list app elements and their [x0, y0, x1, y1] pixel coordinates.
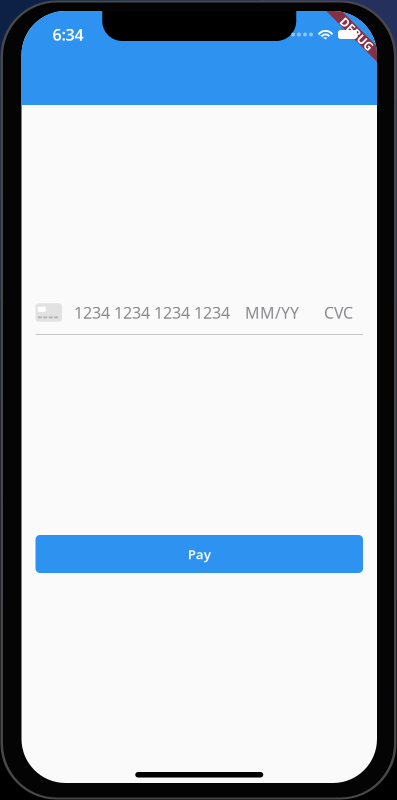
- staticText: CVC: [324, 302, 353, 323]
- staticText: DEBUG: [336, 26, 378, 42]
- staticText: 6:34: [52, 24, 83, 45]
- staticText: 1234 1234 1234 1234: [74, 302, 230, 323]
- staticText: MM/YY: [245, 302, 299, 323]
- staticText: Pay: [188, 545, 211, 563]
- button[interactable]: 1234 1234 1234 1234: [35, 291, 363, 335]
- button[interactable]: Pay: [35, 535, 363, 573]
